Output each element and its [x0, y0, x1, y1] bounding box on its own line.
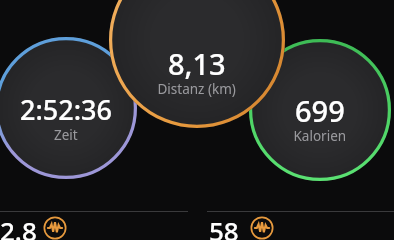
button[interactable]: Workout summary	[0, 0, 394, 240]
